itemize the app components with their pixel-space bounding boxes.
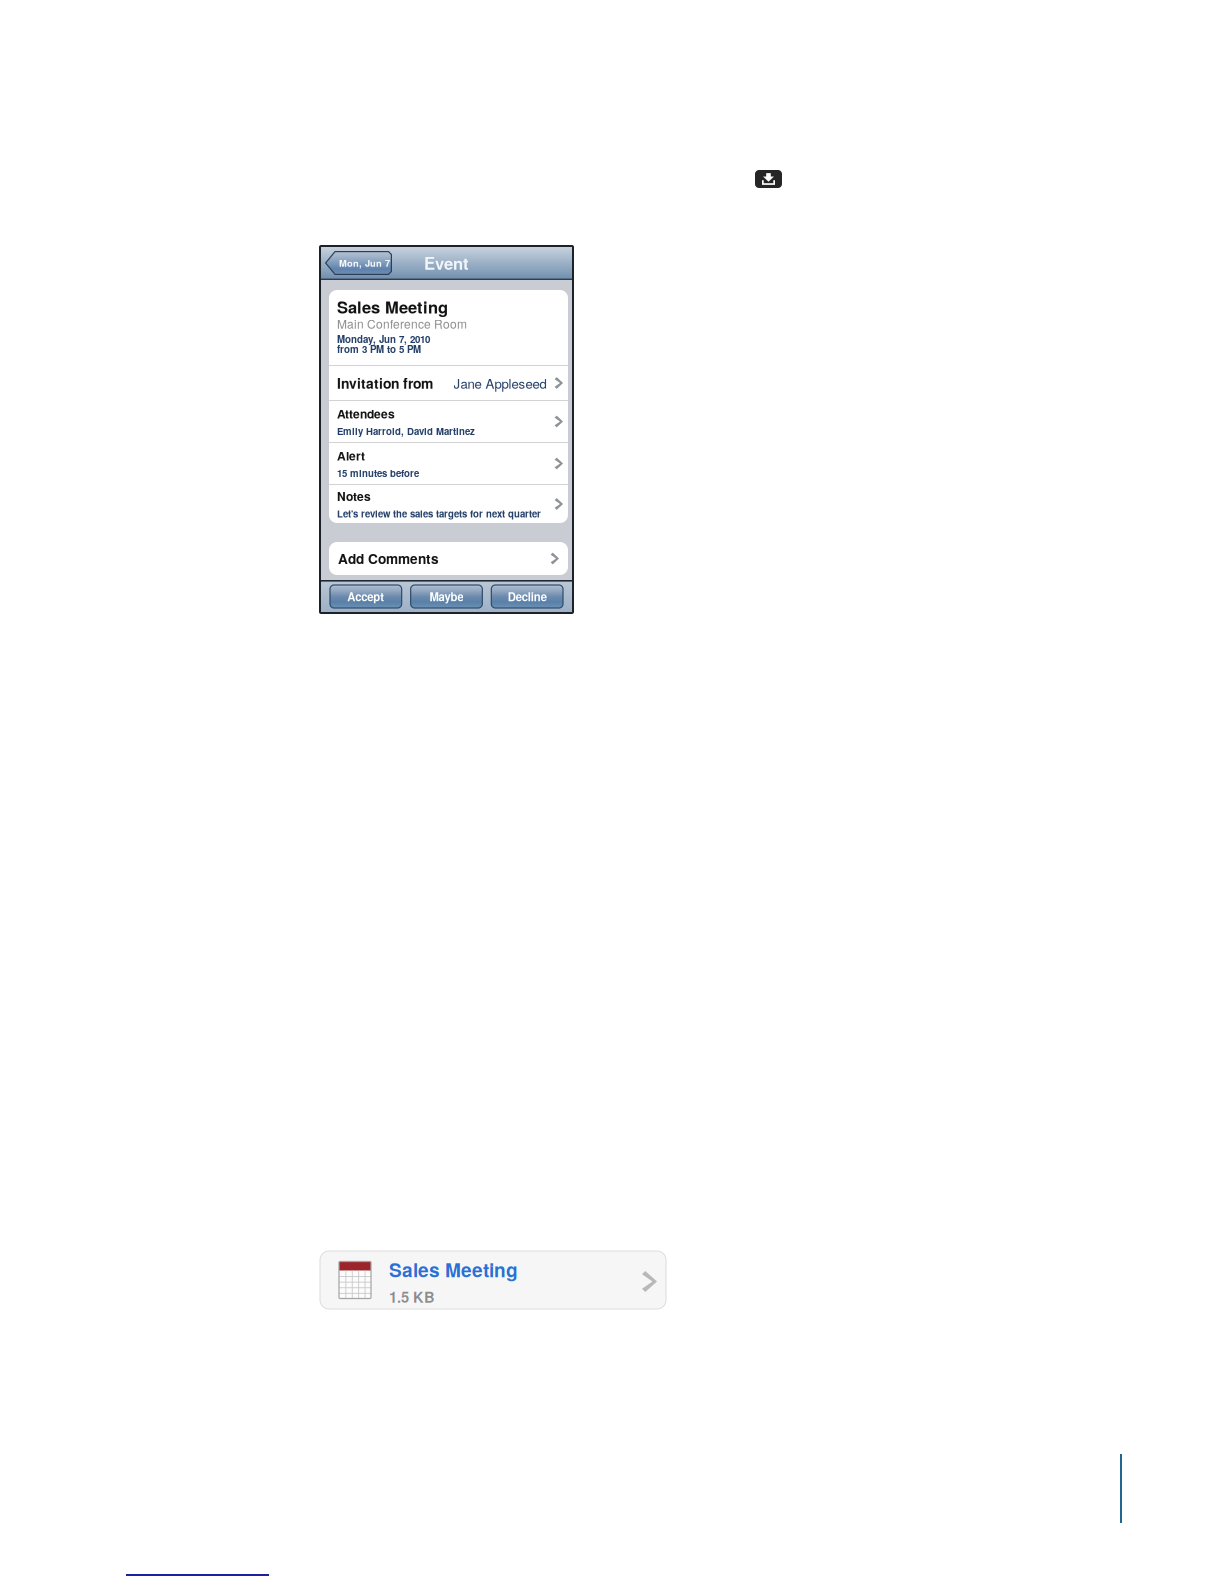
staticText: Maybe (429, 588, 463, 605)
staticText: Add Comments (338, 549, 439, 568)
staticText: Alert (337, 447, 365, 464)
button[interactable]: Sales Meeting (320, 1251, 666, 1309)
staticText: Event (424, 251, 469, 275)
staticText: Invitation from (337, 373, 433, 393)
button[interactable]: Download (755, 170, 782, 188)
staticText: Emily Harrold, David Martinez (337, 424, 475, 438)
staticText: Mon, Jun 7 (339, 256, 390, 270)
staticText: Monday, Jun 7, 2010 (337, 332, 430, 346)
button[interactable]: Decline (491, 585, 563, 608)
button[interactable]: Attendees (329, 401, 568, 442)
staticText: Notes (337, 487, 371, 505)
staticText: 1.5 KB (389, 1286, 435, 1307)
staticText: Decline (508, 588, 547, 605)
staticText: Sales Meeting (389, 1256, 518, 1283)
staticText: Jane Appleseed (454, 373, 547, 392)
staticText: Accept (347, 588, 384, 605)
staticText: from 3 PM to 5 PM (337, 342, 421, 356)
staticText: 15 minutes before (337, 466, 419, 480)
button[interactable]: Invitation from (329, 366, 568, 400)
staticText: Main Conference Room (337, 315, 467, 332)
button[interactable]: Accept (330, 585, 402, 608)
button[interactable]: Add Comments (320, 542, 573, 575)
button[interactable]: Mon, Jun 7 (320, 251, 392, 275)
staticText: Attendees (337, 405, 395, 422)
button[interactable]: Maybe (411, 585, 482, 608)
button[interactable]: Alert (329, 443, 568, 484)
button[interactable]: Notes (329, 485, 568, 523)
staticText: Sales Meeting (337, 295, 448, 319)
staticText: Let's review the sales targets for next … (337, 507, 541, 520)
